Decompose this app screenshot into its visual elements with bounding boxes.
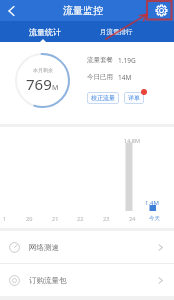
button[interactable]: 网络测速 — [0, 231, 174, 263]
staticText: 月流量排行 — [100, 28, 133, 36]
staticText: 流量统计 — [29, 27, 61, 37]
staticText: 22 — [77, 215, 84, 222]
staticText: 网络测速 — [29, 243, 59, 252]
staticText: 订购流量包 — [29, 276, 67, 285]
button[interactable]: Settings — [151, 0, 172, 21]
staticText: 流量套餐 — [87, 56, 113, 64]
staticText: 校正流量 — [91, 94, 115, 102]
button[interactable]: 校正流量 — [87, 92, 119, 104]
button[interactable]: 流量统计 — [22, 21, 68, 42]
staticText: 流量监控 — [63, 4, 103, 17]
staticText: 14.8M — [124, 137, 140, 144]
staticText: 14M — [118, 73, 132, 82]
staticText: 21 — [52, 215, 59, 222]
button[interactable]: Back — [0, 0, 23, 21]
staticText: 1.19G — [118, 56, 136, 65]
button[interactable]: 月流量排行 — [100, 21, 136, 42]
staticText: 20 — [26, 215, 33, 222]
staticText: 1 — [3, 215, 7, 222]
staticText: 今日已用 — [87, 73, 113, 81]
staticText: 1.4M — [145, 199, 159, 207]
button[interactable]: 详单 — [124, 92, 144, 104]
staticText: 23 — [103, 215, 110, 222]
staticText: M — [52, 83, 59, 93]
button[interactable]: 订购流量包 — [0, 264, 174, 296]
staticText: 详单 — [128, 94, 140, 102]
staticText: 24 — [129, 215, 136, 222]
staticText: 今天 — [149, 215, 160, 222]
staticText: 769 — [26, 74, 52, 94]
staticText: 本月剩余 — [33, 67, 53, 73]
